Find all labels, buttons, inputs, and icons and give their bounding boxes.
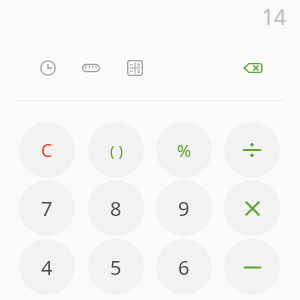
button[interactable]	[224, 122, 280, 178]
staticText: ( )	[110, 140, 123, 160]
button[interactable]: Backspace	[237, 52, 269, 84]
staticText: 6	[178, 254, 190, 281]
button[interactable]: History	[32, 52, 64, 84]
button[interactable]: 4	[19, 239, 75, 295]
staticText: C	[41, 138, 53, 163]
button[interactable]: 8	[88, 180, 144, 236]
button[interactable]: 9	[156, 180, 212, 236]
button[interactable]: 7	[19, 180, 75, 236]
staticText: 8	[110, 195, 122, 222]
button[interactable]: ( )	[88, 122, 144, 178]
button[interactable]: 5	[88, 239, 144, 295]
button[interactable]: 6	[156, 239, 212, 295]
staticText: %	[177, 139, 192, 162]
staticText: 5	[110, 254, 122, 281]
button[interactable]	[224, 239, 280, 295]
button[interactable]: %	[156, 122, 212, 178]
button[interactable]: Unit converter	[75, 52, 107, 84]
button[interactable]: Scientific calculator	[119, 52, 151, 84]
staticText: 14	[261, 3, 286, 32]
button[interactable]: C	[19, 122, 75, 178]
staticText: 7	[41, 195, 53, 222]
staticText: 9	[178, 195, 190, 222]
button[interactable]	[224, 180, 280, 236]
staticText: 4	[41, 254, 53, 281]
